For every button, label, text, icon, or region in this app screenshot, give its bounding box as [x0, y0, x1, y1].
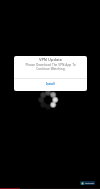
staticText: VPN Update: [14, 57, 87, 62]
staticText: Install: [46, 82, 55, 86]
button[interactable]: Advertiser badge: [80, 181, 95, 185]
staticText: Sponsored: [85, 181, 95, 185]
staticText: Please Download The VPN App To Continue …: [14, 63, 87, 71]
button[interactable]: Install: [14, 79, 87, 91]
